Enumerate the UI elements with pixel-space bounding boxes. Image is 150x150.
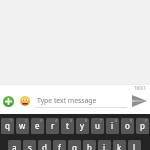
staticText: a: [12, 142, 17, 150]
staticText: h: [87, 142, 92, 150]
staticText: 7: [100, 118, 103, 123]
button[interactable]: h: [83, 140, 96, 150]
staticText: 6: [85, 118, 88, 123]
staticText: 9: [130, 118, 133, 123]
button[interactable]: y: [76, 118, 89, 134]
staticText: 160/1: [134, 85, 146, 91]
button[interactable]: l: [128, 140, 141, 150]
button[interactable]: d: [38, 140, 51, 150]
button[interactable]: f: [53, 140, 66, 150]
staticText: l: [133, 142, 136, 150]
staticText: j: [103, 142, 106, 150]
button[interactable]: Send: [129, 91, 149, 111]
staticText: s: [28, 142, 32, 150]
staticText: f: [58, 142, 61, 150]
button[interactable]: p: [136, 118, 149, 134]
button[interactable]: j: [98, 140, 111, 150]
staticText: k: [117, 142, 122, 150]
staticText: e: [35, 120, 40, 131]
button[interactable]: k: [113, 140, 126, 150]
button[interactable]: r: [46, 118, 59, 134]
staticText: p: [140, 120, 145, 131]
button[interactable]: a: [8, 140, 21, 150]
staticText: q: [5, 120, 10, 131]
staticText: w: [19, 120, 26, 131]
staticText: g: [72, 142, 77, 150]
button[interactable]: s: [23, 140, 36, 150]
staticText: 1: [10, 118, 13, 123]
button[interactable]: g: [68, 140, 81, 150]
staticText: r: [51, 120, 55, 131]
staticText: y: [80, 120, 85, 131]
button[interactable]: o: [121, 118, 134, 134]
staticText: 2: [25, 118, 28, 123]
button[interactable]: i: [106, 118, 119, 134]
staticText: 5: [70, 118, 73, 123]
staticText: 4: [55, 118, 58, 123]
staticText: 0: [145, 118, 148, 123]
button[interactable]: Emoji: [19, 95, 31, 107]
button[interactable]: t: [61, 118, 74, 134]
staticText: u: [95, 120, 100, 131]
button[interactable]: u: [91, 118, 104, 134]
button[interactable]: q: [1, 118, 14, 134]
button[interactable]: e: [31, 118, 44, 134]
button[interactable]: w: [16, 118, 29, 134]
staticText: Type text message: [37, 96, 97, 105]
staticText: d: [42, 142, 47, 150]
button[interactable]: Add attachment: [2, 95, 14, 107]
button[interactable]: Type text message: [36, 91, 129, 111]
staticText: 3: [40, 118, 43, 123]
staticText: t: [66, 120, 69, 131]
staticText: i: [111, 120, 114, 131]
staticText: o: [125, 120, 130, 131]
staticText: 8: [115, 118, 118, 123]
